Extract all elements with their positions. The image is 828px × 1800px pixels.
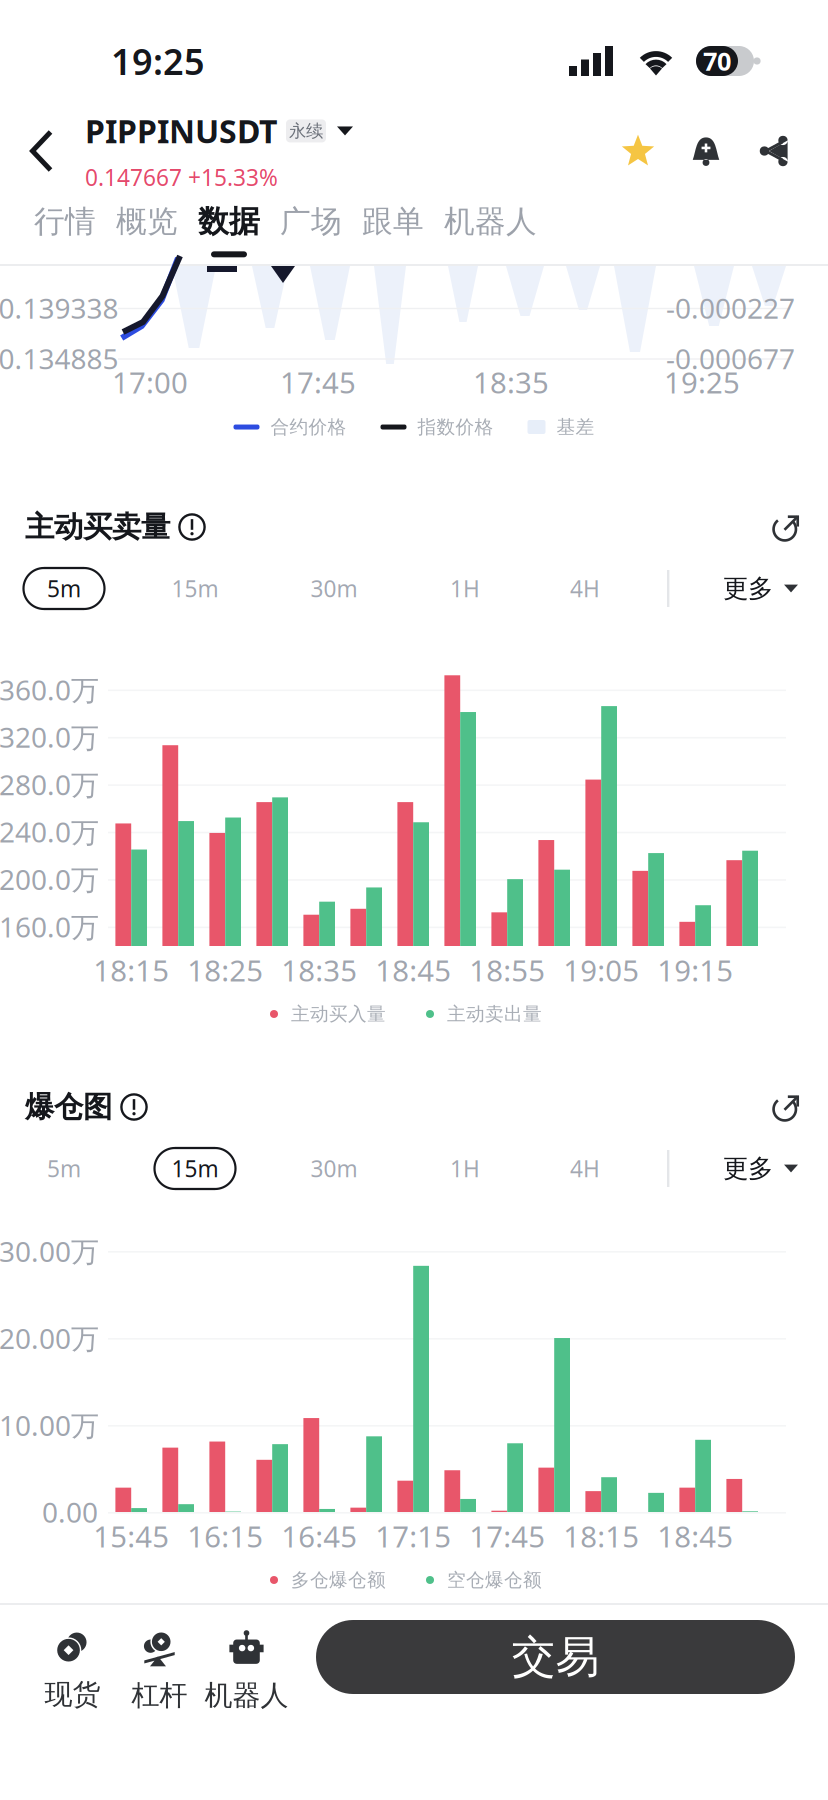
staticText: 1H: [450, 573, 480, 603]
staticText: -0.000227: [666, 289, 795, 326]
staticText: 多仓爆仓额: [291, 1568, 386, 1591]
staticText: 19:05: [563, 950, 639, 989]
button[interactable]: 1H: [424, 1148, 505, 1189]
staticText: 跟单: [362, 203, 424, 240]
button[interactable]: 30m: [293, 1148, 374, 1189]
staticText: 更多: [723, 573, 773, 604]
staticText: 17:45: [469, 1516, 545, 1555]
staticText: 19:25: [664, 362, 740, 401]
staticText: 70: [703, 44, 731, 78]
staticText: 0.134885: [0, 340, 118, 377]
staticText: 18:45: [657, 1516, 733, 1555]
staticText: 280.0万: [0, 766, 99, 803]
staticText: 交易: [511, 1630, 599, 1684]
button[interactable]: 广场: [270, 196, 352, 264]
button[interactable]: 交易: [316, 1620, 795, 1694]
staticText: 主动卖出量: [447, 1002, 542, 1025]
staticText: 数据: [198, 203, 260, 240]
button[interactable]: 机器人: [203, 1605, 290, 1709]
staticText: 15m: [171, 1153, 218, 1183]
staticText: 160.0万: [0, 908, 99, 945]
button[interactable]: 数据: [188, 196, 270, 264]
staticText: 18:55: [469, 950, 545, 989]
staticText: 16:45: [281, 1516, 357, 1555]
staticText: 30m: [310, 573, 357, 603]
staticText: 20.00万: [0, 1319, 99, 1357]
staticText: 18:35: [473, 362, 549, 401]
staticText: 200.0万: [0, 861, 99, 898]
staticText: 基差: [556, 415, 594, 438]
staticText: 主动买入量: [291, 1002, 386, 1025]
button[interactable]: Open full screen: [760, 1080, 814, 1134]
button[interactable]: 1H: [424, 568, 505, 609]
staticText: 360.0万: [0, 671, 99, 708]
button[interactable]: 机器人: [434, 196, 547, 264]
staticText: 17:00: [112, 362, 188, 401]
staticText: 16:15: [187, 1516, 263, 1555]
button[interactable]: 5m: [23, 1148, 104, 1189]
button[interactable]: 4H: [544, 1148, 625, 1189]
staticText: 19:25: [111, 37, 205, 85]
button[interactable]: 30m: [293, 568, 374, 609]
staticText: 主动买卖量: [25, 509, 170, 545]
staticText: 指数价格: [417, 415, 493, 438]
staticText: 更多: [723, 1153, 773, 1184]
button[interactable]: Open full screen: [760, 500, 814, 554]
staticText: 30m: [310, 1153, 357, 1183]
staticText: 320.0万: [0, 718, 99, 755]
staticText: 15:45: [93, 1516, 169, 1555]
button[interactable]: 概览: [106, 196, 188, 264]
button[interactable]: 5m: [23, 568, 104, 609]
staticText: 4H: [570, 573, 600, 603]
staticText: 30.00万: [0, 1232, 99, 1270]
staticText: 4H: [570, 1153, 600, 1183]
staticText: 合约价格: [270, 415, 346, 438]
staticText: 240.0万: [0, 813, 99, 850]
button[interactable]: Back: [0, 106, 85, 196]
staticText: PIPPINUSDT: [85, 110, 277, 152]
staticText: 0.00: [42, 1493, 98, 1531]
staticText: 18:15: [93, 950, 169, 989]
staticText: 0.147667 +15.33%: [85, 162, 278, 192]
button[interactable]: Share: [740, 117, 808, 185]
staticText: 17:45: [280, 362, 356, 401]
button[interactable]: Price alert: [672, 117, 740, 185]
staticText: 0.139338: [0, 289, 118, 326]
button[interactable]: 现货: [29, 1605, 116, 1709]
staticText: 18:25: [187, 950, 263, 989]
staticText: 1H: [450, 1153, 480, 1183]
button[interactable]: 行情: [24, 196, 106, 264]
staticText: 18:15: [563, 1516, 639, 1555]
button[interactable]: 杠杆: [116, 1605, 203, 1709]
staticText: -0.000677: [666, 340, 795, 377]
staticText: 行情: [34, 203, 96, 240]
staticText: 概览: [116, 203, 178, 240]
button[interactable]: 跟单: [352, 196, 434, 264]
staticText: 空仓爆仓额: [447, 1568, 542, 1591]
staticText: 机器人: [444, 203, 537, 240]
staticText: 机器人: [204, 1678, 288, 1713]
staticText: 永续: [289, 120, 323, 142]
staticText: 爆仓图: [25, 1089, 112, 1125]
staticText: 杠杆: [131, 1678, 187, 1713]
staticText: 15m: [171, 573, 218, 603]
staticText: 19:15: [657, 950, 733, 989]
staticText: 5m: [47, 1153, 81, 1183]
button[interactable]: 15m: [154, 568, 235, 609]
button[interactable]: 更多: [723, 1148, 798, 1189]
staticText: 5m: [47, 573, 81, 603]
staticText: 10.00万: [0, 1406, 99, 1444]
staticText: 18:35: [281, 950, 357, 989]
button[interactable]: Favourite: [604, 117, 672, 185]
staticText: 广场: [280, 203, 342, 240]
staticText: 17:15: [375, 1516, 451, 1555]
button[interactable]: 更多: [723, 568, 798, 609]
staticText: 18:45: [375, 950, 451, 989]
staticText: 现货: [44, 1677, 100, 1712]
button[interactable]: 4H: [544, 568, 625, 609]
button[interactable]: 15m: [154, 1148, 235, 1189]
